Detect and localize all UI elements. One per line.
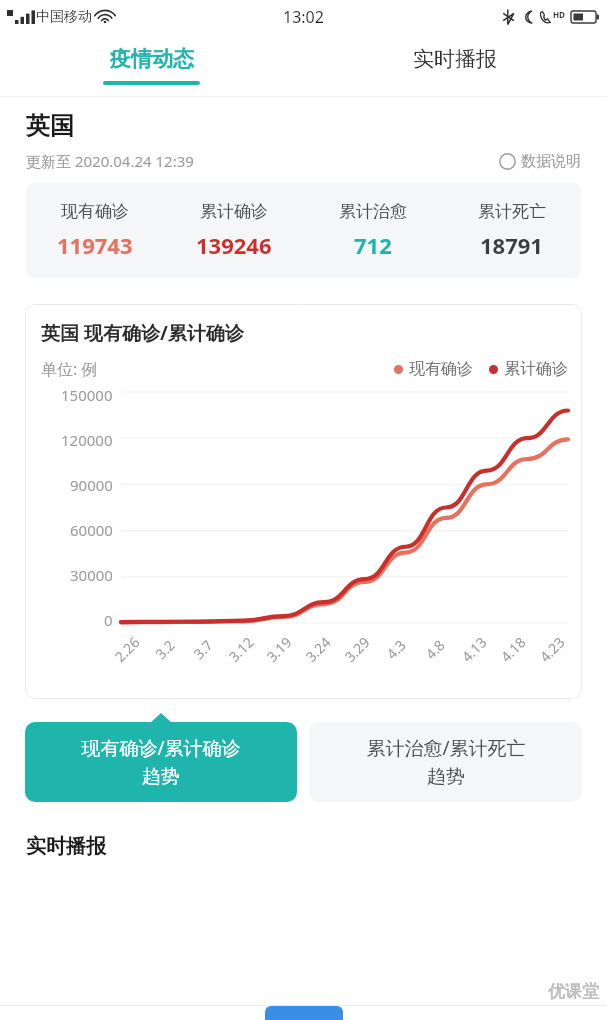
staticText: 3.24 xyxy=(301,633,334,666)
staticText: 150000 xyxy=(61,385,113,405)
staticText: 139246 xyxy=(196,230,272,260)
staticText: 单位: 例 xyxy=(41,358,98,380)
staticText: 13:02 xyxy=(283,6,324,28)
staticText: 实时播报 xyxy=(26,834,106,859)
staticText: 数据说明 xyxy=(521,152,581,171)
staticText: 3.19 xyxy=(262,633,295,666)
staticText: 现有确诊 xyxy=(409,359,473,379)
staticText: 累计确诊 xyxy=(504,359,568,379)
staticText: 累计治愈 xyxy=(339,201,407,222)
staticText: 0 xyxy=(104,610,113,630)
staticText: 中国移动 xyxy=(36,8,92,26)
button[interactable]: 数据说明 xyxy=(499,152,581,171)
staticText: 120000 xyxy=(61,430,113,450)
staticText: 现有确诊/累计确诊 趋势 xyxy=(81,735,241,789)
staticText: 3.2 xyxy=(151,635,179,663)
staticText: 4.3 xyxy=(382,635,410,663)
staticText: 实时播报 xyxy=(413,46,497,72)
button[interactable]: 累计治愈/累计死亡 趋势 xyxy=(309,722,582,802)
staticText: 4.18 xyxy=(496,633,529,666)
staticText: 3.12 xyxy=(224,633,257,666)
staticText: 4.13 xyxy=(457,633,490,666)
button[interactable]: 现有确诊/累计确诊 趋势 xyxy=(25,722,297,802)
staticText: 英国 xyxy=(26,111,74,141)
staticText: 现有确诊 xyxy=(61,201,129,222)
staticText: 英国 现有确诊/累计确诊 xyxy=(41,320,244,346)
staticText: 712 xyxy=(354,230,392,260)
staticText: HD xyxy=(553,9,565,20)
staticText: 累计治愈/累计死亡 趋势 xyxy=(366,735,526,789)
staticText: 4.8 xyxy=(421,635,449,663)
staticText: 30000 xyxy=(70,565,113,585)
staticText: 119743 xyxy=(57,230,133,260)
staticText: 4.23 xyxy=(535,633,568,666)
button[interactable]: 疫情动态 xyxy=(0,34,303,96)
staticText: 2.26 xyxy=(110,633,143,666)
staticText: 累计死亡 xyxy=(478,201,546,222)
staticText: 3.29 xyxy=(340,633,373,666)
staticText: 疫情动态 xyxy=(110,46,194,72)
staticText: 90000 xyxy=(70,475,113,495)
staticText: 3.7 xyxy=(189,635,217,663)
staticText: 优课堂 xyxy=(548,981,599,1002)
button[interactable]: 实时播报 xyxy=(303,34,607,96)
staticText: 累计确诊 xyxy=(200,201,268,222)
staticText: 更新至 2020.04.24 12:39 xyxy=(26,151,194,171)
staticText: 18791 xyxy=(480,230,543,260)
staticText: 60000 xyxy=(70,520,113,540)
